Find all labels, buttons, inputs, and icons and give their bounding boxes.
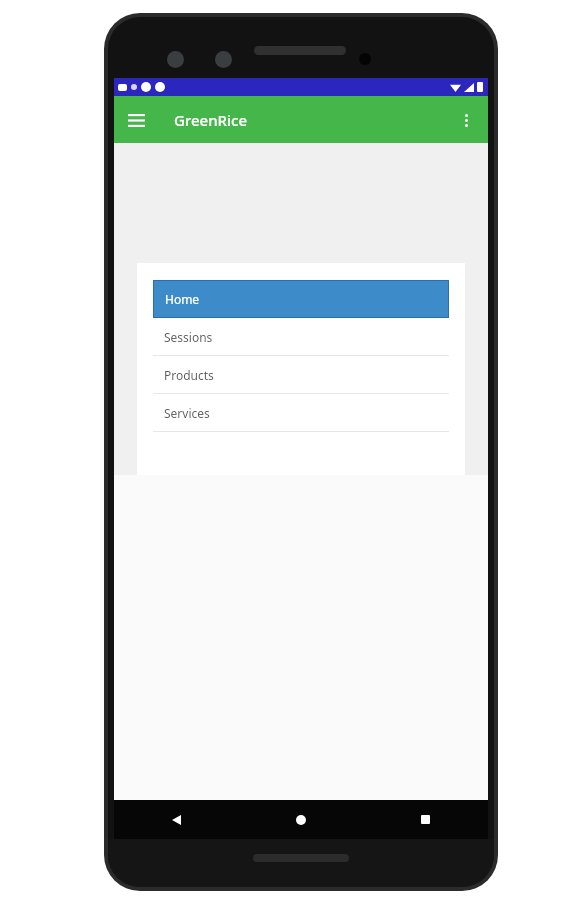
button[interactable]: Back [114, 800, 238, 839]
staticText: Services [164, 405, 210, 421]
button[interactable]: Products [153, 356, 449, 394]
button[interactable]: Recent apps [363, 800, 488, 839]
staticText: Home [165, 291, 200, 307]
staticText: Products [164, 367, 214, 383]
button[interactable]: Home [238, 800, 363, 839]
button[interactable]: Home [153, 280, 449, 318]
staticText: GreenRice [174, 110, 248, 130]
button[interactable]: Open navigation menu [119, 103, 153, 137]
button[interactable]: Sessions [153, 318, 449, 356]
button[interactable]: Services [153, 394, 449, 432]
button[interactable]: More options [450, 104, 482, 136]
staticText: Sessions [164, 329, 213, 345]
